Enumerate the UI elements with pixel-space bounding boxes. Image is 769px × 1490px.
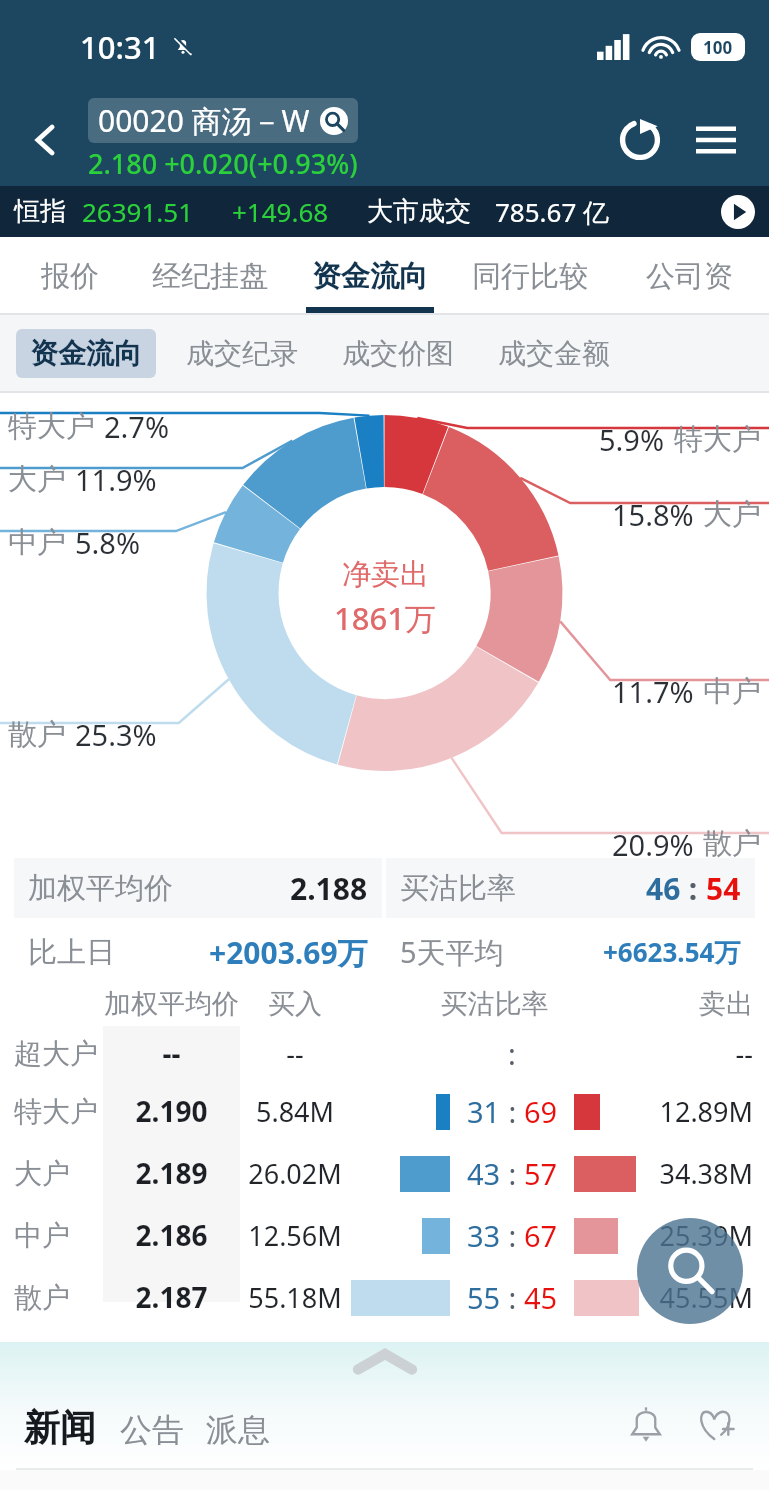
staticText: 公告 bbox=[120, 1410, 184, 1450]
staticText: 大户 bbox=[703, 496, 761, 533]
staticText: 散户 bbox=[8, 716, 66, 753]
button[interactable]: 资金流向 bbox=[290, 237, 450, 315]
button[interactable]: 成交价图 bbox=[342, 336, 454, 371]
staticText: 超大户 bbox=[14, 1036, 103, 1071]
button[interactable]: 加权平均价 bbox=[28, 858, 368, 918]
staticText: 加权平均价 bbox=[28, 870, 173, 907]
button[interactable]: 5天平均 bbox=[400, 922, 741, 982]
staticText: 55.18M bbox=[240, 1279, 350, 1316]
staticText: 派息 bbox=[206, 1410, 270, 1450]
staticText: 2.7% bbox=[104, 407, 170, 446]
staticText: 100 bbox=[703, 36, 733, 59]
staticText: 55 bbox=[467, 1278, 501, 1317]
button[interactable]: Search bbox=[637, 1218, 743, 1324]
staticText: 00020 商汤－W bbox=[98, 100, 310, 141]
staticText: -- bbox=[240, 1035, 350, 1072]
staticText: 资金流向 bbox=[312, 258, 428, 295]
staticText: 中户 bbox=[8, 524, 66, 561]
button[interactable]: Expand bbox=[358, 1350, 412, 1376]
staticText: 31 bbox=[467, 1092, 501, 1131]
button[interactable]: 比上日 bbox=[28, 922, 368, 982]
button[interactable]: Alerts bbox=[617, 1396, 675, 1454]
button[interactable]: 新闻 bbox=[24, 1405, 96, 1450]
button[interactable]: 成交金额 bbox=[498, 336, 610, 371]
staticText: 45.55M bbox=[639, 1279, 753, 1316]
staticText: 45 bbox=[524, 1278, 558, 1317]
staticText: 同行比较 bbox=[472, 258, 588, 295]
button[interactable]: 公司资 bbox=[610, 237, 769, 315]
staticText: 69 bbox=[524, 1092, 558, 1131]
staticText: 买入 bbox=[240, 987, 350, 1021]
button[interactable]: 报价 bbox=[10, 237, 130, 315]
staticText: 散户 bbox=[703, 825, 761, 858]
staticText: 67 bbox=[524, 1216, 558, 1255]
button[interactable]: 派息 bbox=[206, 1410, 270, 1450]
staticText: 成交价图 bbox=[342, 336, 454, 371]
staticText: 新闻 bbox=[24, 1405, 96, 1450]
staticText: 11.9% bbox=[75, 460, 157, 499]
staticText: : bbox=[501, 1092, 524, 1131]
button[interactable]: 恒指 bbox=[14, 186, 755, 237]
button[interactable]: 大户 bbox=[0, 1142, 769, 1204]
button[interactable]: 中户 bbox=[0, 1204, 769, 1266]
staticText: 特大户 bbox=[8, 408, 95, 445]
staticText: 经纪挂盘 bbox=[152, 258, 268, 295]
staticText: 5.84M bbox=[240, 1093, 350, 1130]
staticText: 2.187 bbox=[103, 1278, 240, 1316]
staticText: 特大户 bbox=[674, 421, 761, 458]
button[interactable]: Add to watchlist bbox=[687, 1396, 745, 1454]
staticText: 报价 bbox=[41, 258, 99, 295]
button[interactable]: 公告 bbox=[120, 1410, 184, 1450]
staticText: 26391.51 bbox=[82, 194, 194, 229]
staticText: 比上日 bbox=[28, 934, 115, 971]
staticText: 1861万 bbox=[334, 597, 436, 639]
staticText: 公司资 bbox=[646, 258, 733, 295]
staticText: 20.9% bbox=[612, 825, 694, 858]
staticText: 12.89M bbox=[639, 1093, 753, 1130]
staticText: 散户 bbox=[14, 1280, 103, 1315]
staticText: 33 bbox=[467, 1216, 501, 1255]
staticText: : bbox=[508, 1034, 516, 1073]
staticText: 大市成交 bbox=[367, 195, 471, 228]
button[interactable]: Back bbox=[18, 112, 74, 168]
staticText: 785.67 亿 bbox=[495, 194, 610, 230]
staticText: 10:31 bbox=[80, 26, 160, 68]
button[interactable]: 经纪挂盘 bbox=[130, 237, 290, 315]
staticText: +149.68 bbox=[232, 194, 329, 229]
staticText: 46 bbox=[646, 868, 681, 909]
staticText: -- bbox=[639, 1035, 753, 1072]
staticText: 加权平均价 bbox=[103, 987, 240, 1021]
button[interactable]: 同行比较 bbox=[450, 237, 610, 315]
staticText: 5.8% bbox=[75, 523, 141, 562]
staticText: 57 bbox=[524, 1154, 558, 1193]
staticText: 5.9% bbox=[599, 420, 665, 459]
staticText: 43 bbox=[467, 1154, 501, 1193]
staticText: +6623.54万 bbox=[603, 934, 741, 970]
staticText: 恒指 bbox=[14, 195, 66, 228]
staticText: : bbox=[681, 868, 706, 909]
staticText: 2.190 bbox=[103, 1092, 240, 1130]
staticText: 净卖出 bbox=[342, 556, 429, 593]
staticText: 15.8% bbox=[612, 495, 694, 534]
button[interactable]: 成交纪录 bbox=[186, 336, 298, 371]
button[interactable]: Menu bbox=[685, 109, 747, 171]
button[interactable]: 资金流向 bbox=[30, 336, 142, 371]
staticText: 25.39M bbox=[639, 1217, 753, 1254]
staticText: +2003.69万 bbox=[209, 932, 368, 973]
staticText: : bbox=[501, 1154, 524, 1193]
staticText: : bbox=[501, 1278, 524, 1317]
staticText: -- bbox=[103, 1034, 240, 1072]
staticText: 34.38M bbox=[639, 1155, 753, 1192]
staticText: 特大户 bbox=[14, 1094, 103, 1129]
button[interactable]: 超大户 bbox=[0, 1026, 769, 1080]
staticText: 25.3% bbox=[75, 715, 157, 754]
button[interactable]: 散户 bbox=[0, 1266, 769, 1328]
button[interactable]: 买沽比率 bbox=[400, 858, 741, 918]
staticText: 11.7% bbox=[612, 672, 694, 711]
button[interactable]: 特大户 bbox=[0, 1080, 769, 1142]
staticText: 中户 bbox=[703, 673, 761, 710]
button[interactable]: 00020 商汤－W bbox=[98, 100, 348, 141]
button[interactable]: Refresh bbox=[609, 109, 671, 171]
staticText: 12.56M bbox=[240, 1217, 350, 1254]
staticText: 成交纪录 bbox=[186, 336, 298, 371]
